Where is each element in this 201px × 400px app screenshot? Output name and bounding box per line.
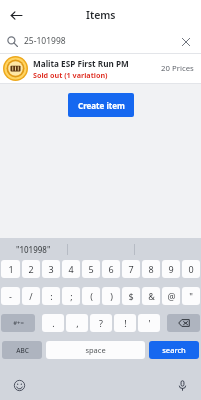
button[interactable]: 25-101998 <box>0 29 201 53</box>
button[interactable]: #+= <box>1 314 35 332</box>
button[interactable]: " <box>182 287 200 305</box>
button[interactable]: Backspace <box>167 314 200 332</box>
button[interactable]: search <box>149 341 199 359</box>
button[interactable]: ( <box>82 287 100 305</box>
button[interactable]: Create item <box>68 93 134 117</box>
button[interactable]: "101998" <box>0 238 67 260</box>
staticText: space <box>85 345 106 355</box>
staticText: Create item <box>78 100 125 111</box>
button[interactable]: Voice input <box>172 375 192 395</box>
button[interactable]: Malita ESP First Run PM <box>0 54 201 83</box>
staticText: ABC <box>16 346 29 355</box>
staticText: - <box>9 290 12 302</box>
button[interactable]: 9 <box>162 260 180 278</box>
button[interactable]: 3 <box>42 260 60 278</box>
button[interactable]: $ <box>122 287 140 305</box>
button[interactable]: 5 <box>82 260 100 278</box>
staticText: 20 Prices <box>161 63 194 74</box>
staticText: @ <box>167 290 176 302</box>
button[interactable]: ' <box>138 314 160 332</box>
staticText: ; <box>70 290 73 302</box>
button[interactable]: Clear search <box>177 33 194 50</box>
staticText: " <box>189 290 193 302</box>
staticText: ( <box>90 290 93 302</box>
button[interactable]: 1 <box>1 260 20 278</box>
button[interactable]: 7 <box>122 260 140 278</box>
staticText: 25-101998 <box>24 35 66 47</box>
staticText: 1 <box>8 263 14 275</box>
staticText: 0 <box>188 263 194 275</box>
staticText: , <box>76 317 79 329</box>
button[interactable]: 0 <box>182 260 200 278</box>
button[interactable]: ABC <box>2 341 42 359</box>
staticText: ) <box>110 290 113 302</box>
button[interactable]: 6 <box>102 260 120 278</box>
button[interactable]: : <box>42 287 60 305</box>
staticText: . <box>52 317 55 329</box>
button[interactable]: ! <box>114 314 136 332</box>
staticText: 9 <box>168 263 174 275</box>
button[interactable]: @ <box>162 287 180 305</box>
button[interactable]: ; <box>62 287 80 305</box>
staticText: #+= <box>13 319 24 327</box>
button[interactable]: / <box>22 287 40 305</box>
staticText: 7 <box>128 263 134 275</box>
staticText: 2 <box>28 263 34 275</box>
staticText: 5 <box>88 263 94 275</box>
button[interactable]: ? <box>90 314 112 332</box>
staticText: $ <box>128 290 134 302</box>
staticText: & <box>148 290 155 302</box>
staticText: search <box>162 345 186 355</box>
button[interactable]: - <box>1 287 20 305</box>
staticText: 6 <box>108 263 114 275</box>
staticText: Sold out (1 variation) <box>33 70 108 80</box>
button[interactable]: . <box>42 314 64 332</box>
staticText: ' <box>148 317 151 329</box>
staticText: : <box>50 290 53 302</box>
staticText: ! <box>124 317 127 329</box>
button[interactable]: 2 <box>22 260 40 278</box>
button[interactable]: , <box>66 314 88 332</box>
button[interactable]: 4 <box>62 260 80 278</box>
staticText: Items <box>86 8 116 22</box>
staticText: 3 <box>48 263 54 275</box>
staticText: 8 <box>148 263 154 275</box>
staticText: 4 <box>68 263 74 275</box>
staticText: Malita ESP First Run PM <box>33 58 129 69</box>
staticText: "101998" <box>16 244 51 255</box>
staticText: / <box>29 290 33 302</box>
staticText: ? <box>99 317 103 329</box>
button[interactable]: ) <box>102 287 120 305</box>
button[interactable]: 8 <box>142 260 160 278</box>
button[interactable]: space <box>46 341 145 359</box>
button[interactable]: Back <box>5 4 27 26</box>
button[interactable]: & <box>142 287 160 305</box>
button[interactable]: Emoji <box>9 375 29 395</box>
